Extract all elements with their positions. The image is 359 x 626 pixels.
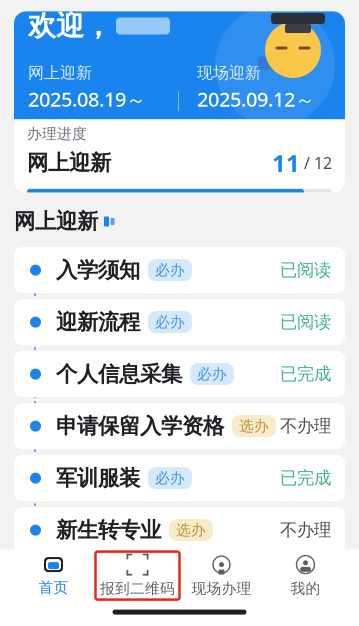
staticText: 必办	[155, 261, 185, 279]
staticText: 欢迎，	[28, 9, 112, 43]
staticText: 选办	[239, 417, 269, 435]
staticText: 选办	[176, 521, 206, 539]
staticText: 2025.08.19～09.07	[28, 86, 146, 139]
staticText: 11	[272, 147, 300, 179]
staticText: 现场办理	[191, 580, 251, 598]
staticText: 入学须知	[56, 257, 140, 283]
staticText: / 12	[300, 152, 332, 173]
staticText: 军训服装	[56, 465, 140, 491]
staticText: 必办	[197, 365, 227, 383]
staticText: 报到二维码	[100, 580, 175, 598]
button[interactable]: 我的	[263, 552, 347, 600]
staticText: 首页	[38, 579, 68, 597]
staticText: 现场迎新	[197, 63, 261, 83]
button[interactable]: 申请保留入学资格	[14, 403, 345, 449]
button[interactable]: 入学须知	[14, 247, 345, 293]
button[interactable]: 首页	[11, 552, 95, 600]
staticText: 我的	[290, 580, 320, 598]
staticText: 已完成	[280, 363, 331, 385]
button[interactable]: 迎新流程	[14, 299, 345, 345]
button[interactable]: 个人信息采集	[14, 351, 345, 397]
button[interactable]: 报到二维码	[95, 552, 179, 600]
staticText: 已完成	[280, 467, 331, 489]
staticText: 网上迎新	[14, 208, 98, 235]
staticText: 申请保留入学资格	[56, 413, 224, 439]
button[interactable]: 新生转专业	[14, 507, 345, 553]
staticText: 迎新流程	[56, 309, 140, 335]
staticText: 网上迎新	[28, 63, 92, 83]
staticText: 已阅读	[280, 311, 331, 333]
staticText: 办理进度	[27, 125, 87, 143]
staticText: 已阅读	[280, 259, 331, 281]
staticText: 不办理	[280, 415, 331, 437]
staticText: 不办理	[280, 519, 331, 541]
staticText: 2025.09.12～09.13	[197, 86, 315, 139]
staticText: 新生转专业	[56, 517, 161, 543]
staticText: 网上迎新	[27, 150, 111, 176]
staticText: 必办	[155, 313, 185, 331]
staticText: 必办	[155, 469, 185, 487]
button[interactable]: 现场办理	[179, 552, 263, 600]
staticText: 个人信息采集	[56, 361, 182, 387]
button[interactable]: 军训服装	[14, 455, 345, 501]
